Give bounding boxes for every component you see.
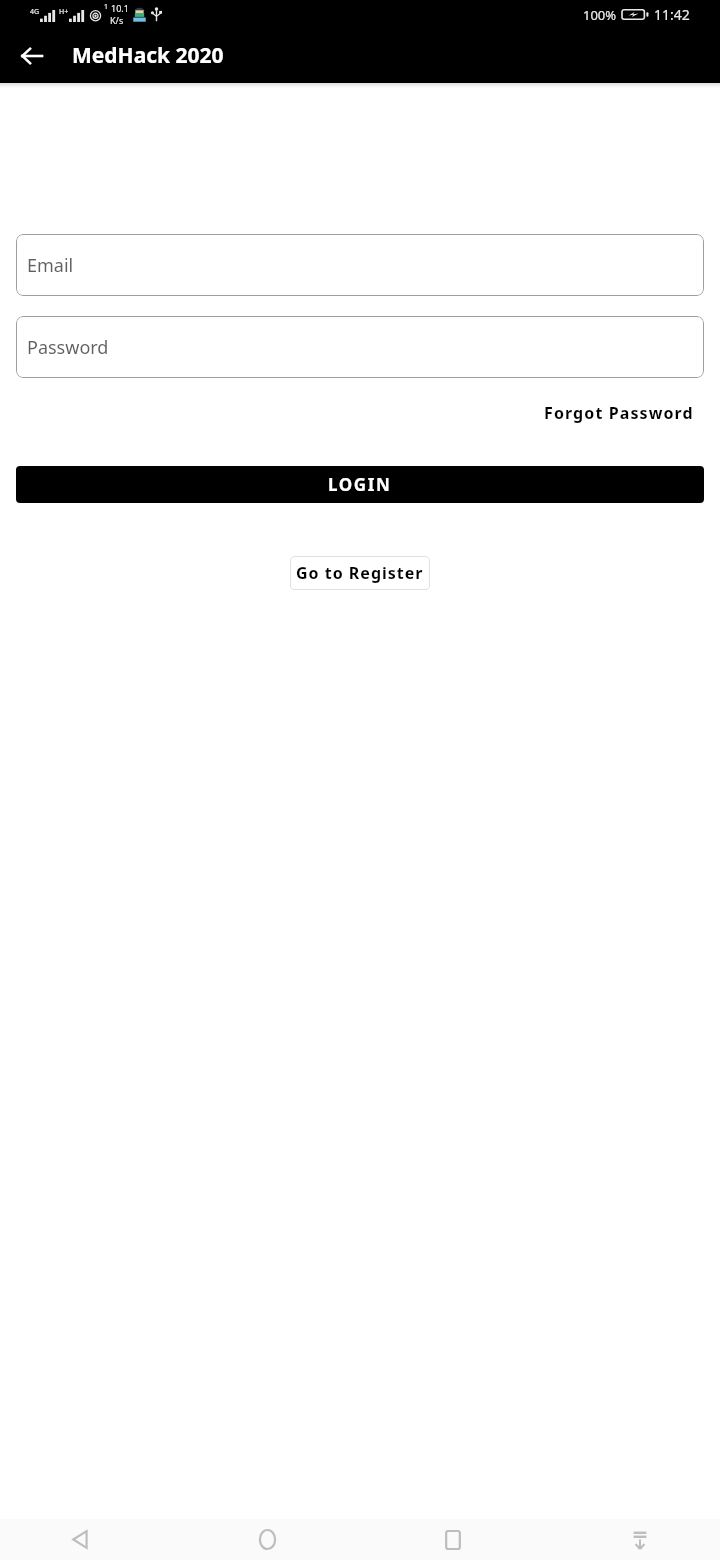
button[interactable]: Email <box>16 234 704 296</box>
staticText: 1 <box>104 2 109 12</box>
staticText: K/s <box>110 14 124 26</box>
staticText: Password <box>27 335 109 360</box>
staticText: H+ <box>59 7 69 17</box>
button[interactable]: Go to Register <box>290 556 430 590</box>
staticText: Email <box>27 253 74 278</box>
staticText: 4G <box>30 7 40 17</box>
button[interactable]: Back <box>8 32 56 80</box>
button[interactable]: Password <box>16 316 704 378</box>
staticText: 10.1 <box>111 2 129 14</box>
button[interactable]: Hide keyboard <box>616 1519 664 1560</box>
button[interactable]: Forgot Password <box>542 396 696 430</box>
staticText: LOGIN <box>328 473 392 496</box>
staticText: 100% <box>583 6 617 24</box>
button[interactable]: Recent apps <box>429 1519 477 1560</box>
staticText: Go to Register <box>296 562 424 584</box>
button[interactable]: Home <box>243 1519 291 1560</box>
staticText: Forgot Password <box>544 402 694 424</box>
staticText: MedHack 2020 <box>72 41 224 70</box>
button[interactable]: LOGIN <box>16 466 704 503</box>
staticText: 11:42 <box>654 5 690 24</box>
button[interactable]: Back <box>56 1519 104 1560</box>
